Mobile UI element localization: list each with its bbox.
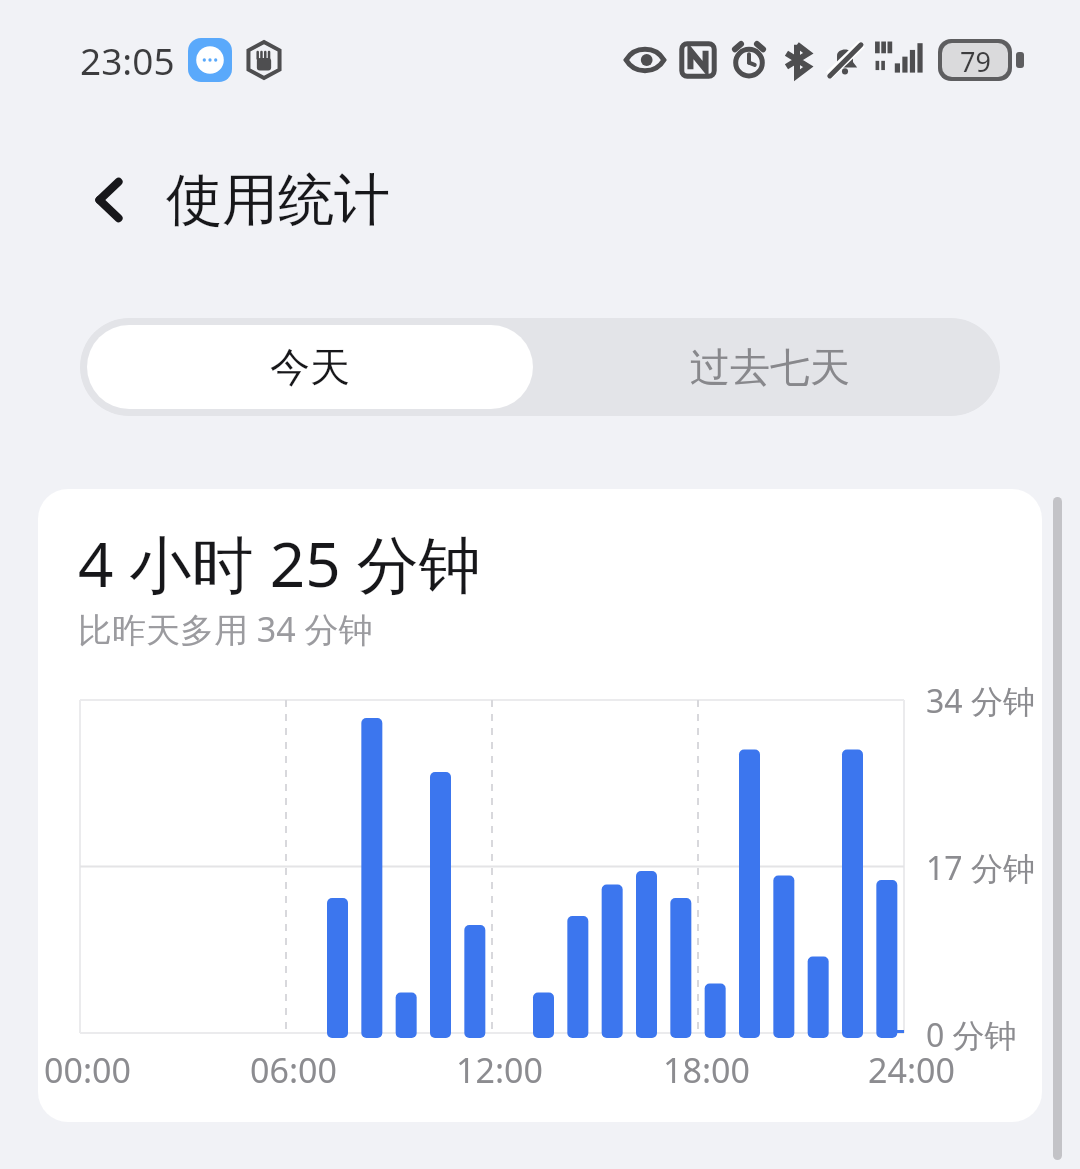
staticText: 06:00 [250,1047,337,1093]
staticText: 34 分钟 [926,679,1035,723]
staticText: 12:00 [456,1047,543,1093]
staticText: 0 分钟 [926,1013,1017,1057]
staticText: 18:00 [663,1047,750,1093]
staticText: 24:00 [868,1047,955,1093]
staticText: 79 [960,43,991,77]
staticText: 17 分钟 [926,846,1035,890]
button[interactable]: 过去七天 [540,318,1000,416]
button[interactable]: Back [74,165,144,235]
staticText: 比昨天多用 34 分钟 [78,606,373,652]
staticText: 使用统计 [166,165,390,236]
staticText: 过去七天 [690,342,850,392]
button[interactable]: 今天 [87,325,533,409]
staticText: 今天 [270,342,350,392]
staticText: 4 小时 25 分钟 [78,521,481,606]
staticText: 00:00 [44,1047,131,1093]
staticText: 23:05 [80,35,175,85]
